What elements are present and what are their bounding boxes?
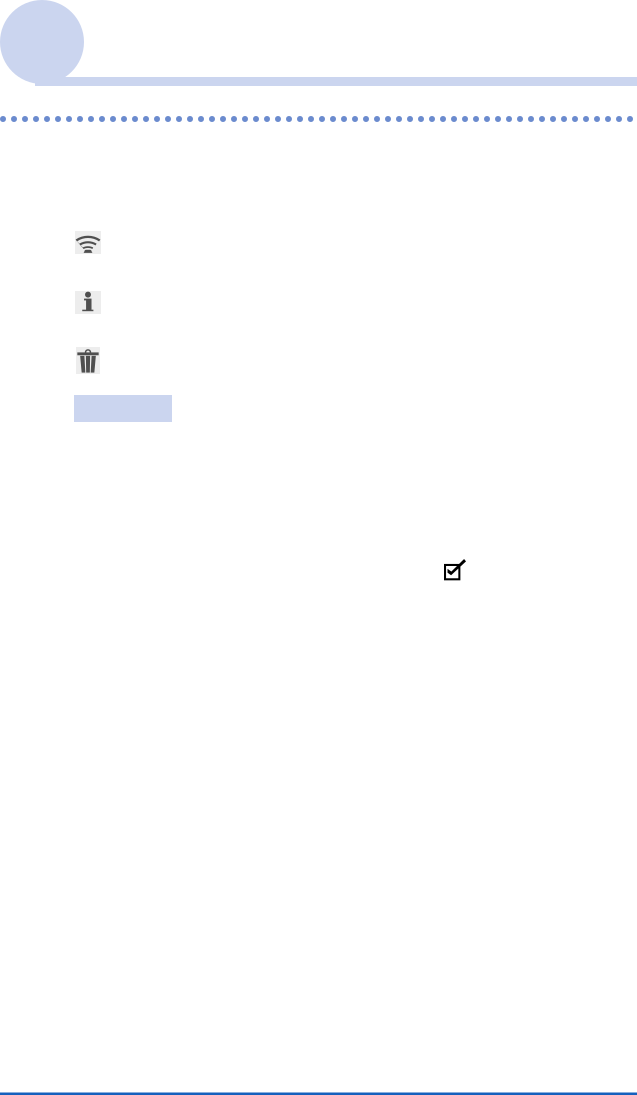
button[interactable]: Wi-Fi bbox=[75, 231, 101, 254]
button[interactable]: Delete bbox=[76, 347, 100, 374]
button[interactable]: Checkbox, checked bbox=[444, 559, 466, 580]
button[interactable]: Information bbox=[75, 291, 101, 314]
